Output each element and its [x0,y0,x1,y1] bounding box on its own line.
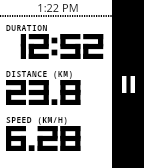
button[interactable]: Pause workout [112,0,144,168]
staticText: DURATION [6,22,48,33]
staticText: 1:22 PM [37,0,79,15]
staticText: SPEED (KM/H) [6,114,69,125]
staticText: DISTANCE (KM) [6,68,74,79]
